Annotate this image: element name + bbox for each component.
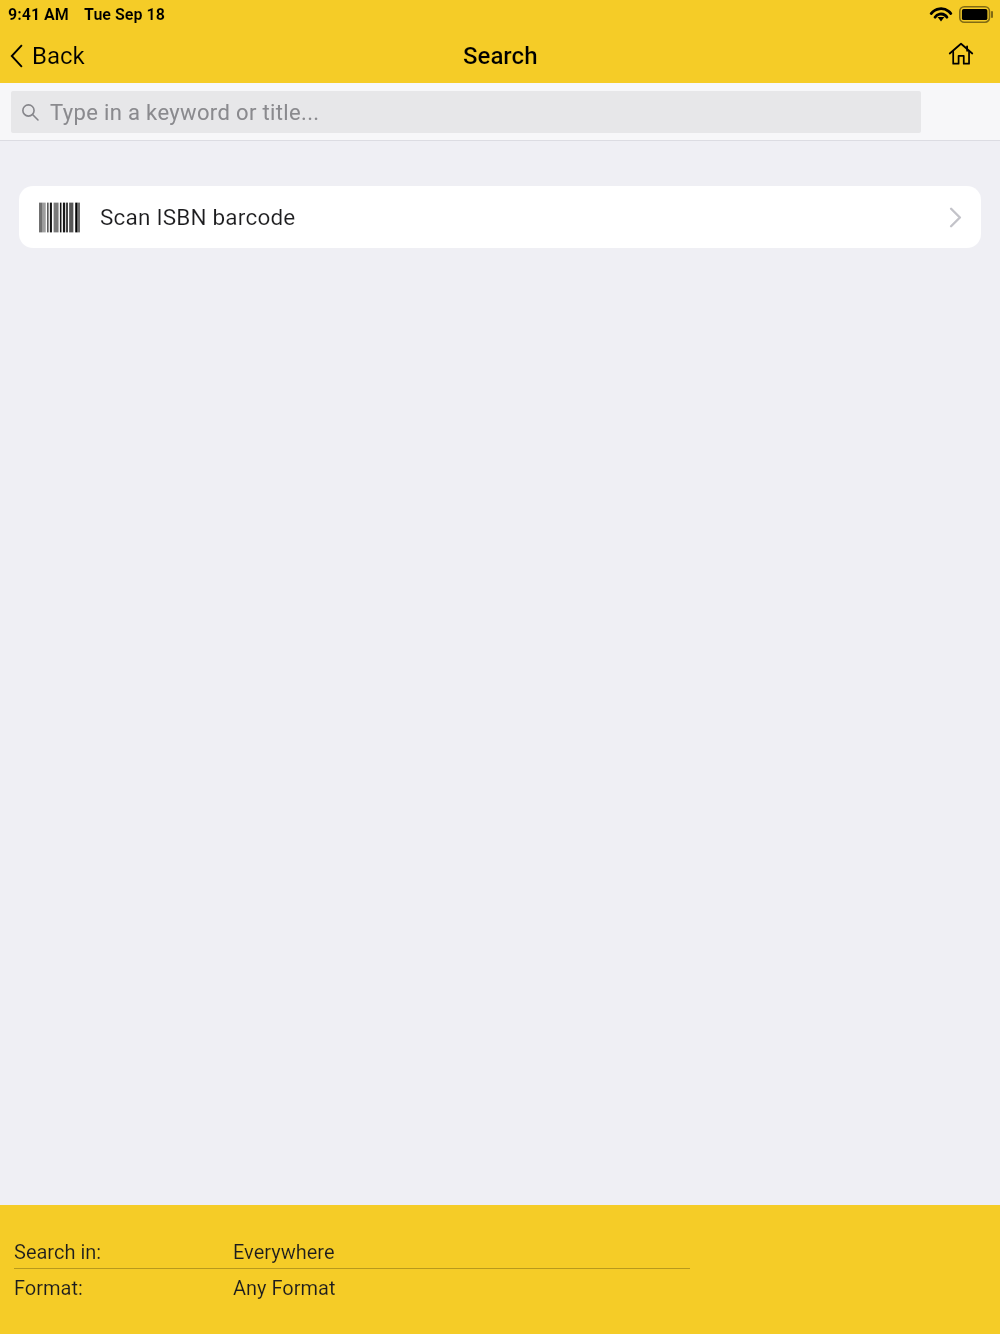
staticText: Format:: [14, 1276, 233, 1299]
button[interactable]: Search field: [11, 91, 921, 133]
staticText: Back: [32, 42, 85, 70]
button[interactable]: Home: [935, 37, 1000, 74]
staticText: Everywhere: [233, 1240, 335, 1263]
staticText: Type in a keyword or title...: [50, 100, 320, 126]
button[interactable]: Scan ISBN barcode: [19, 186, 981, 248]
button[interactable]: Format:: [0, 1269, 1000, 1305]
staticText: 9:41 AM: [8, 5, 69, 24]
button[interactable]: Back: [0, 36, 99, 76]
staticText: Search in:: [14, 1240, 233, 1263]
button[interactable]: Search in:: [0, 1234, 1000, 1268]
staticText: Search: [463, 42, 538, 70]
staticText: Tue Sep 18: [84, 5, 165, 24]
staticText: Scan ISBN barcode: [100, 204, 296, 230]
staticText: Any Format: [233, 1276, 336, 1299]
